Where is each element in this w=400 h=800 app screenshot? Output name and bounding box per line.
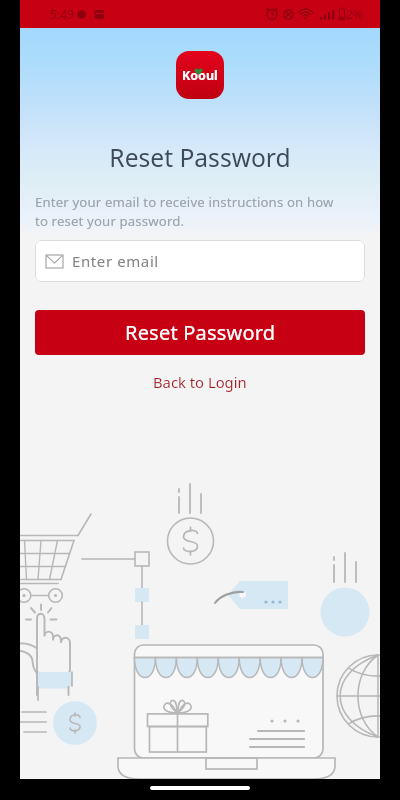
- staticText: Enter email: [72, 251, 159, 271]
- staticText: Enter your email to receive instructions…: [35, 193, 365, 230]
- button[interactable]: Back to Login: [143, 368, 257, 396]
- button[interactable]: Enter email: [35, 240, 365, 282]
- other: Kooul logo: [176, 51, 224, 99]
- staticText: 2%: [346, 6, 364, 22]
- staticText: Reset Password: [20, 141, 380, 175]
- staticText: Kooul: [182, 67, 218, 84]
- button[interactable]: Reset Password: [35, 310, 365, 355]
- staticText: 5:49: [50, 6, 74, 22]
- staticText: Back to Login: [153, 372, 247, 392]
- staticText: Reset Password: [125, 319, 276, 346]
